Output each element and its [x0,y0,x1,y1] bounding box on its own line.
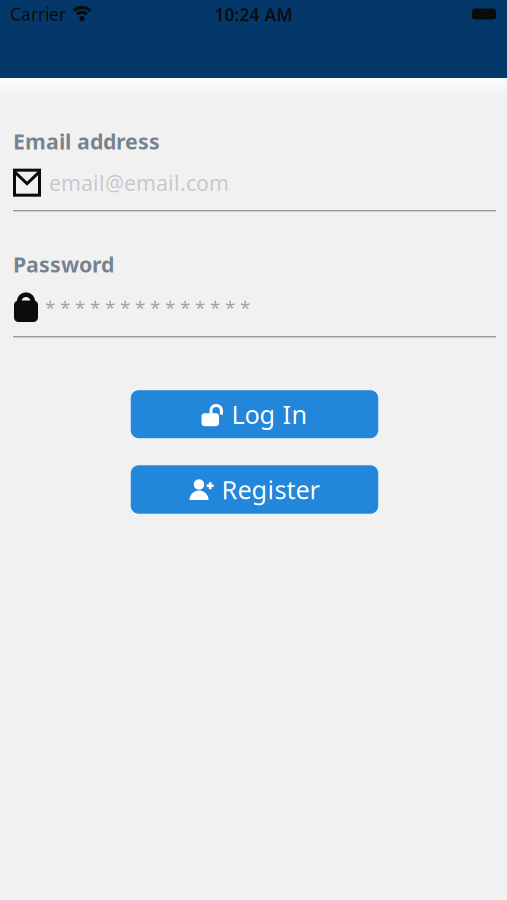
staticText: Register [221,473,319,506]
staticText: Log In [231,397,307,431]
staticText: Email address [13,127,160,155]
staticText: Password [13,250,114,278]
staticText: 10:24 AM [214,3,292,26]
staticText: email@email.com [49,168,229,197]
button[interactable]: Log In [131,390,378,438]
button[interactable]: Email address [13,168,229,197]
button[interactable]: Register [131,465,378,514]
staticText: Carrier [10,2,66,25]
button[interactable]: Password [14,291,250,322]
staticText: * * * * * * * * * * * * * * [45,295,250,320]
